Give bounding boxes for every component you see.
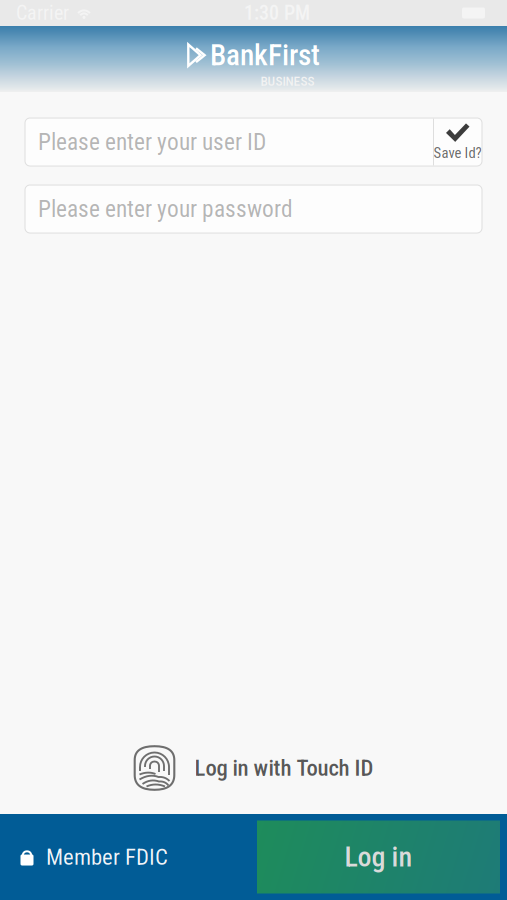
- staticText: Please enter your password: [38, 195, 293, 223]
- staticText: Log in: [344, 841, 412, 873]
- staticText: BUSINESS: [260, 73, 314, 89]
- button[interactable]: Log in with Touch ID: [133, 745, 373, 791]
- button[interactable]: Save Id?: [433, 118, 482, 165]
- button[interactable]: Log in: [257, 820, 500, 893]
- staticText: Carrier: [16, 1, 69, 25]
- staticText: BankFirst: [210, 38, 320, 72]
- staticText: Log in with Touch ID: [194, 755, 373, 781]
- staticText: Save Id?: [433, 144, 481, 162]
- staticText: 1:30 PM: [244, 1, 310, 25]
- staticText: Please enter your user ID: [38, 128, 266, 156]
- staticText: Member FDIC: [46, 844, 168, 870]
